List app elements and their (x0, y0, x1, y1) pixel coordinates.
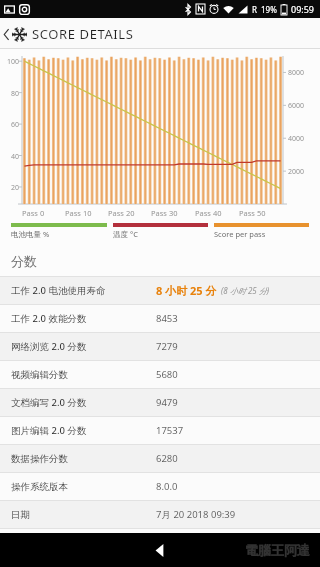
staticText: 9479 (156, 396, 178, 409)
staticText: 分数 (11, 253, 37, 269)
staticText: R (252, 4, 257, 15)
button[interactable]: 工作 2.0 效能分数 (0, 305, 320, 332)
staticText: (8 小时 25 分) (221, 285, 270, 296)
staticText: 2000 (288, 167, 305, 177)
staticText: 工作 2.0 效能分数 (11, 312, 156, 325)
staticText: 6280 (156, 452, 178, 465)
staticText: 网络浏览 2.0 分数 (11, 340, 156, 353)
staticText: Score per pass (214, 229, 266, 239)
button[interactable]: 数据操作分数 (0, 445, 320, 472)
staticText: 文档编写 2.0 分数 (11, 396, 156, 409)
staticText: 電腦王阿達 (245, 542, 310, 558)
staticText: 100 (3, 57, 19, 67)
staticText: 图片编辑 2.0 分数 (11, 424, 156, 437)
staticText: Pass 40 (195, 208, 222, 218)
button[interactable]: 图片编辑 2.0 分数 (0, 417, 320, 444)
staticText: 60 (3, 120, 19, 130)
staticText: 09:59 (291, 3, 315, 15)
staticText: 7279 (156, 340, 178, 353)
button[interactable]: 文档编写 2.0 分数 (0, 389, 320, 416)
staticText: 电池电量 % (11, 229, 50, 239)
staticText: 17537 (156, 424, 184, 437)
button[interactable]: 视频编辑分数 (0, 361, 320, 388)
staticText: Pass 30 (151, 208, 178, 218)
staticText: 日期 (11, 509, 156, 521)
button[interactable]: 网络浏览 2.0 分数 (0, 333, 320, 360)
staticText: 19% (261, 4, 277, 15)
staticText: 80 (3, 89, 19, 99)
staticText: Pass 20 (108, 208, 135, 218)
staticText: 7月 20 2018 09:39 (156, 508, 236, 521)
staticText: 温度 °C (113, 229, 138, 239)
button[interactable]: Back (140, 533, 180, 567)
staticText: 4000 (288, 134, 305, 144)
button[interactable]: 日期 (0, 501, 320, 528)
staticText: Pass 10 (65, 208, 92, 218)
staticText: 数据操作分数 (11, 453, 156, 465)
staticText: 5680 (156, 368, 178, 381)
staticText: 6000 (288, 101, 305, 111)
staticText: 操作系统版本 (11, 481, 156, 493)
staticText: SCORE DETAILS (32, 25, 134, 43)
staticText: 8453 (156, 312, 178, 325)
staticText: 8 小时 25 分 (156, 283, 217, 298)
staticText: 8000 (288, 68, 305, 78)
staticText: 20 (3, 183, 19, 193)
staticText: 8.0.0 (156, 480, 178, 493)
staticText: Pass 0 (22, 208, 45, 218)
staticText: 40 (3, 152, 19, 162)
staticText: Pass 50 (239, 208, 266, 218)
button[interactable]: 操作系统版本 (0, 473, 320, 500)
staticText: 工作 2.0 电池使用寿命 (11, 284, 156, 297)
button[interactable]: Back (0, 25, 140, 43)
staticText: 视频编辑分数 (11, 369, 156, 381)
button[interactable]: 工作 2.0 电池使用寿命 (0, 277, 320, 304)
